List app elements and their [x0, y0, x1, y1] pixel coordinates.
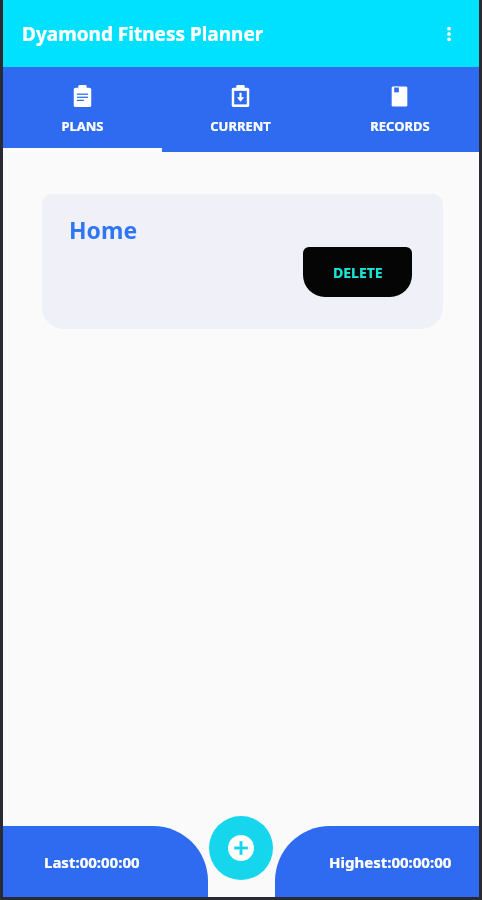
button[interactable]: Highest:00:00:00	[275, 826, 479, 897]
button[interactable]: CURRENT	[161, 67, 320, 152]
staticText: Last:00:00:00	[44, 852, 140, 872]
staticText: Highest:00:00:00	[329, 852, 452, 872]
button[interactable]: More options	[427, 12, 471, 56]
staticText: DELETE	[333, 263, 383, 282]
staticText: RECORDS	[370, 117, 430, 135]
button[interactable]: Add plan	[209, 816, 273, 880]
staticText: PLANS	[61, 117, 104, 135]
button[interactable]: RECORDS	[320, 67, 479, 152]
staticText: Home	[69, 214, 138, 245]
staticText: CURRENT	[210, 117, 271, 135]
button[interactable]: DELETE	[303, 247, 412, 297]
button[interactable]: PLANS	[3, 67, 161, 152]
staticText: Dyamond Fitness Planner	[22, 21, 264, 47]
button[interactable]: Last:00:00:00	[3, 826, 208, 897]
button[interactable]: Home	[42, 194, 443, 329]
